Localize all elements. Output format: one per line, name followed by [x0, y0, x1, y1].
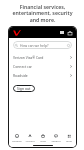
staticText: Verizon Visa® Card: [13, 55, 44, 60]
staticText: Connect car: [13, 64, 32, 69]
staticText: Sign out: [17, 86, 31, 91]
button[interactable]: Roadside: [13, 71, 72, 80]
button[interactable]: How can we help?: [13, 41, 72, 49]
button[interactable]: Account: [23, 133, 36, 142]
staticText: Financial services, entertainment, secur…: [12, 3, 73, 24]
button[interactable]: More: [62, 133, 75, 142]
button[interactable]: Verizon home: [12, 29, 21, 36]
button[interactable]: Messages: [58, 29, 65, 36]
staticText: Roadside: [13, 73, 28, 78]
staticText: Account: [25, 139, 35, 142]
button[interactable]: Sign out: [13, 85, 35, 92]
staticText: Discover: [12, 139, 22, 142]
button[interactable]: Connect car: [13, 62, 72, 71]
button[interactable]: Support: [49, 133, 62, 142]
staticText: How can we help?: [20, 43, 49, 48]
button[interactable]: Discover: [10, 133, 23, 142]
button[interactable]: Shop: [36, 133, 49, 142]
staticText: More: [66, 139, 72, 142]
staticText: Support: [51, 139, 61, 142]
staticText: Shop: [40, 139, 46, 142]
button[interactable]: Cart: [66, 29, 73, 36]
button[interactable]: Verizon Visa® Card: [13, 53, 72, 62]
